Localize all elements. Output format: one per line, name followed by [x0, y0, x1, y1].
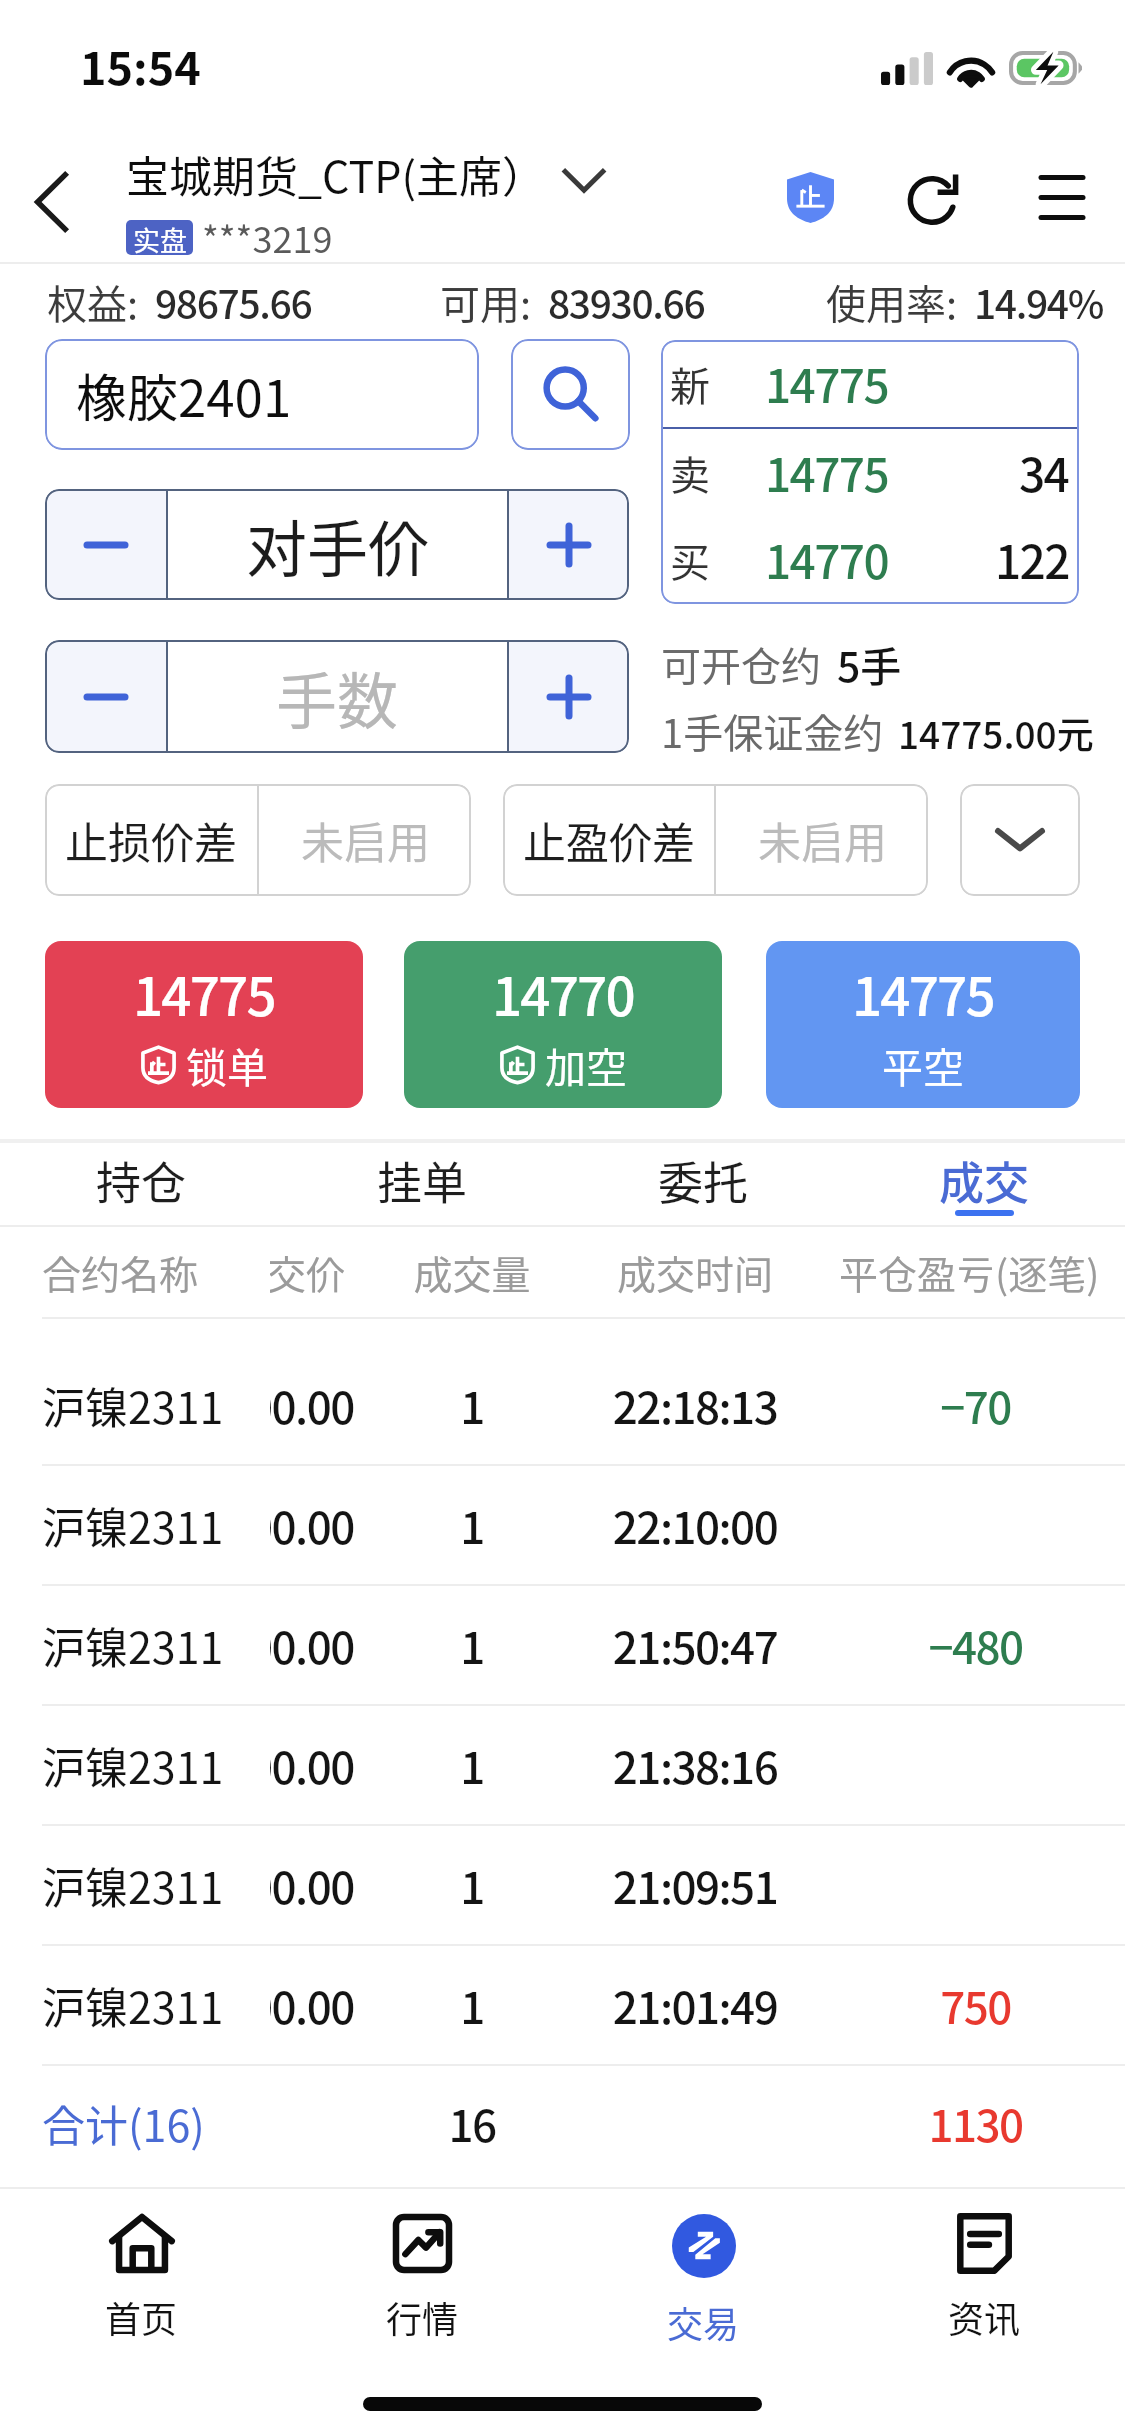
staticText: 21:09:51: [580, 1853, 810, 1917]
staticText: 21:38:16: [580, 1733, 810, 1797]
button[interactable]: Search: [511, 339, 630, 450]
staticText: −480: [898, 1613, 1053, 1677]
button[interactable]: 止损止盈: [757, 142, 863, 252]
staticText: 1: [412, 1853, 532, 1917]
button[interactable]: Menu: [1012, 147, 1112, 247]
button[interactable]: 沪镍2311: [0, 1826, 1125, 1944]
button[interactable]: Back: [0, 132, 120, 262]
staticText: 平空: [882, 1035, 964, 1094]
staticText: 锁单: [186, 1035, 268, 1094]
staticText: 16: [412, 2091, 532, 2155]
staticText: 14775: [852, 955, 994, 1032]
button[interactable]: 14775: [766, 941, 1080, 1108]
staticText: 首页: [105, 2291, 178, 2343]
button[interactable]: 手数: [168, 640, 507, 753]
staticText: 22:10:00: [580, 1493, 810, 1557]
staticText: 对手价: [246, 501, 430, 589]
button[interactable]: 对手价: [168, 489, 507, 600]
staticText: 卖: [670, 444, 710, 502]
staticText: 宝城期货_CTP(主席）: [126, 143, 546, 205]
staticText: 交易: [667, 2296, 740, 2348]
staticText: 沪镍2311: [42, 1854, 224, 1916]
button[interactable]: 沪镍2311: [0, 1586, 1125, 1704]
staticText: 22:18:13: [580, 1373, 810, 1437]
staticText: 00.00: [270, 1973, 354, 2037]
staticText: 成交时间: [580, 1244, 810, 1300]
staticText: 沪镍2311: [42, 1614, 224, 1676]
staticText: 00.00: [270, 1373, 354, 1437]
staticText: 15:54: [80, 33, 201, 98]
button[interactable]: 成交: [844, 1143, 1125, 1225]
button[interactable]: 沪镍2311: [0, 1346, 1125, 1464]
button[interactable]: 14775: [45, 941, 363, 1108]
staticText: 行情: [386, 2291, 459, 2343]
staticText: 未启用: [301, 809, 430, 871]
staticText: 使用率:: [826, 273, 958, 331]
staticText: 14775: [765, 350, 889, 417]
staticText: 00.00: [270, 1613, 354, 1677]
staticText: 1: [412, 1373, 532, 1437]
staticText: 00.00: [270, 1493, 354, 1557]
button[interactable]: 委托: [563, 1143, 844, 1225]
button[interactable]: 交易: [563, 2214, 844, 2374]
staticText: 14775: [133, 955, 275, 1032]
staticText: 合约名称: [42, 1244, 199, 1300]
staticText: 资讯: [948, 2291, 1021, 2343]
button[interactable]: 挂单: [282, 1143, 563, 1225]
button[interactable]: Refresh: [885, 147, 985, 247]
staticText: 14775.00元: [898, 706, 1094, 760]
staticText: 1: [412, 1733, 532, 1797]
staticText: 1: [412, 1493, 532, 1557]
button[interactable]: 沪镍2311: [0, 1946, 1125, 2064]
button[interactable]: 沪镍2311: [0, 1706, 1125, 1824]
button[interactable]: Expand: [960, 784, 1080, 896]
staticText: 成交: [939, 1148, 1030, 1213]
staticText: 沪镍2311: [42, 1374, 224, 1436]
staticText: 平仓盈亏(逐笔): [839, 1244, 1100, 1300]
button[interactable]: Increase: [509, 489, 629, 600]
button[interactable]: Decrease: [45, 640, 166, 753]
staticText: 橡胶2401: [76, 358, 292, 432]
button[interactable]: 14770: [404, 941, 722, 1108]
staticText: 14.94%: [974, 274, 1103, 330]
button[interactable]: 行情: [282, 2214, 563, 2374]
staticText: 沪镍2311: [42, 1974, 224, 2036]
staticText: 1: [412, 1973, 532, 2037]
staticText: 34: [1019, 439, 1069, 506]
staticText: 14775: [765, 439, 889, 506]
staticText: 21:50:47: [580, 1613, 810, 1677]
staticText: 手数: [276, 653, 399, 741]
button[interactable]: 橡胶2401: [45, 339, 479, 450]
staticText: 成交价: [270, 1244, 346, 1300]
staticText: 1130: [898, 2091, 1053, 2155]
button[interactable]: 持仓: [0, 1143, 282, 1225]
button[interactable]: 止损价差: [45, 784, 471, 896]
staticText: 750: [898, 1973, 1053, 2037]
staticText: 止损价差: [65, 809, 237, 871]
staticText: 沪镍2311: [42, 1734, 224, 1796]
staticText: 1: [412, 1613, 532, 1677]
staticText: 14770: [765, 526, 889, 593]
staticText: 沪镍2311: [42, 1494, 224, 1556]
button[interactable]: 止盈价差: [503, 784, 928, 896]
staticText: 98675.66: [155, 274, 312, 330]
staticText: 00.00: [270, 1733, 354, 1797]
staticText: 14770: [492, 955, 634, 1032]
staticText: ***3219: [202, 211, 333, 263]
button[interactable]: Decrease: [45, 489, 166, 600]
staticText: 持仓: [96, 1148, 187, 1213]
button[interactable]: Increase: [509, 640, 629, 753]
button[interactable]: 沪镍2311: [0, 1466, 1125, 1584]
staticText: 加空: [545, 1035, 627, 1094]
staticText: 成交量: [407, 1244, 537, 1300]
button[interactable]: 宝城期货_CTP(主席）: [126, 143, 606, 263]
staticText: 未启用: [758, 809, 887, 871]
button[interactable]: 首页: [0, 2214, 282, 2374]
button[interactable]: 资讯: [844, 2214, 1125, 2374]
staticText: 1手保证金约: [661, 702, 884, 760]
staticText: −70: [898, 1373, 1053, 1437]
staticText: 122: [995, 526, 1069, 593]
